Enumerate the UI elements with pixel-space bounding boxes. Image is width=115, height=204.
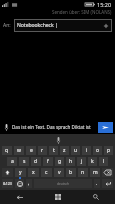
button[interactable]: . — [94, 179, 100, 188]
staticText: f — [47, 158, 49, 165]
button[interactable]: deutsch — [34, 179, 92, 188]
staticText: o — [96, 147, 100, 154]
button[interactable]: d — [31, 157, 41, 166]
button[interactable]: y — [15, 168, 26, 177]
button[interactable]: b — [66, 168, 76, 177]
staticText: u — [74, 147, 78, 154]
staticText: d — [34, 158, 38, 165]
staticText: . — [96, 180, 98, 187]
staticText: n — [81, 169, 85, 176]
button[interactable]: j — [77, 157, 86, 166]
staticText: g — [58, 158, 62, 165]
button[interactable]: Das ist ein Text. Das sprach Diktat ist … — [12, 124, 96, 130]
staticText: q — [5, 147, 9, 154]
staticText: e — [30, 147, 33, 154]
button[interactable]: Notebookcheck | — [14, 19, 112, 32]
staticText: t — [53, 147, 55, 154]
button[interactable]: s — [19, 157, 29, 166]
staticText: Senden über: SIM (NOLANS) — [52, 9, 112, 15]
button[interactable]: z — [60, 146, 69, 155]
staticText: i — [86, 147, 88, 154]
button[interactable]: r — [38, 146, 47, 155]
staticText: k — [91, 158, 94, 165]
button[interactable]: &123 — [2, 179, 13, 188]
button[interactable]: Umschalt — [2, 168, 13, 177]
button[interactable]: t — [49, 146, 58, 155]
staticText: &123 — [3, 181, 12, 186]
staticText: j — [81, 158, 83, 165]
button[interactable]: Löschen — [102, 168, 113, 177]
staticText: , — [28, 180, 30, 187]
staticText: l — [103, 158, 105, 165]
other: Eingabe — [105, 181, 111, 186]
staticText: s — [23, 158, 26, 165]
button[interactable]: q — [2, 146, 12, 155]
other: Emoji — [17, 181, 23, 187]
staticText: x — [32, 169, 35, 176]
button[interactable]: v — [54, 168, 64, 177]
staticText: z — [63, 147, 66, 154]
button[interactable]: p — [104, 146, 113, 155]
button[interactable]: Start — [39, 190, 77, 204]
staticText: c — [45, 169, 48, 176]
staticText: 15:20 — [97, 1, 112, 8]
other: Umschalt — [5, 170, 10, 175]
button[interactable]: f — [43, 157, 53, 166]
button[interactable]: l — [99, 157, 108, 166]
staticText: Das ist ein Text. Das sprach Diktat ist … — [12, 124, 96, 130]
button[interactable]: Diktat — [2, 123, 11, 132]
button[interactable]: u — [71, 146, 80, 155]
button[interactable]: i — [82, 146, 91, 155]
button[interactable]: x — [28, 168, 39, 177]
staticText: b — [69, 169, 73, 176]
button[interactable]: n — [78, 168, 88, 177]
staticText: deutsch — [57, 182, 69, 186]
button[interactable]: Eingabe — [102, 179, 113, 188]
button[interactable]: a — [7, 157, 17, 166]
staticText: a — [11, 158, 14, 165]
other: Kontakt hinzufügen — [103, 23, 109, 29]
staticText: h — [69, 158, 73, 165]
button[interactable]: m — [90, 168, 100, 177]
staticText: w — [17, 147, 21, 154]
button[interactable]: Senden — [98, 122, 113, 133]
staticText: y — [19, 169, 22, 176]
staticText: An: — [3, 22, 11, 29]
button[interactable]: Spracheingabe — [53, 135, 63, 145]
button[interactable]: c — [41, 168, 52, 177]
button[interactable]: h — [66, 157, 75, 166]
button[interactable]: e — [26, 146, 36, 155]
button[interactable]: Zurück — [0, 190, 39, 204]
button[interactable]: k — [88, 157, 97, 166]
button[interactable]: , — [26, 179, 32, 188]
staticText: m — [93, 169, 98, 176]
staticText: v — [58, 169, 61, 176]
button[interactable]: w — [14, 146, 24, 155]
button[interactable]: Emoji — [15, 179, 24, 188]
button[interactable]: Suche — [77, 190, 115, 204]
button[interactable]: o — [93, 146, 102, 155]
other: Löschen — [104, 170, 111, 175]
staticText: Notebookcheck | — [17, 22, 58, 29]
button[interactable]: g — [55, 157, 64, 166]
staticText: p — [107, 147, 111, 154]
staticText: r — [41, 147, 44, 154]
